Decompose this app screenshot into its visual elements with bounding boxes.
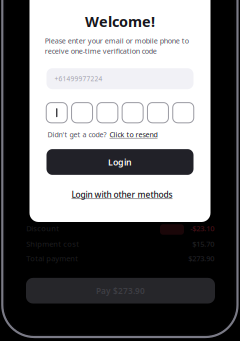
button[interactable]: Click to resend <box>109 130 157 139</box>
button[interactable]: Login <box>46 149 193 175</box>
staticText: Please enter your email or mobile phone … <box>45 36 189 56</box>
staticText: Welcome! <box>85 11 155 31</box>
staticText: Login with other methods <box>71 189 172 200</box>
staticText: Total payment <box>26 253 78 263</box>
staticText: Didn't get a code? <box>47 130 106 139</box>
button[interactable]: Pay $273.90 <box>26 278 215 303</box>
staticText: Login <box>108 156 132 168</box>
staticText: +61499977224 <box>54 74 102 83</box>
staticText: Shipment cost <box>26 239 79 249</box>
staticText: Discount <box>26 223 59 233</box>
staticText: Click to resend <box>109 130 157 139</box>
staticText: $273.90 <box>188 253 214 263</box>
button[interactable]: Login with other methods <box>71 189 172 200</box>
staticText: Pay $273.90 <box>96 285 145 296</box>
staticText: $15.70 <box>192 239 214 249</box>
staticText: -$23.10 <box>190 223 214 233</box>
